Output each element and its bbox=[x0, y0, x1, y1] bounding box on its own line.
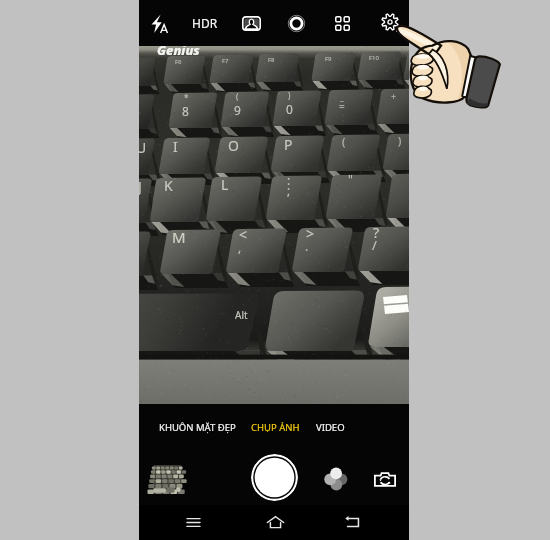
staticText: Genius bbox=[157, 46, 200, 59]
staticText: F10 bbox=[369, 54, 379, 62]
button[interactable]: Flash auto bbox=[143, 7, 175, 39]
staticText: K bbox=[164, 176, 173, 195]
staticText: M bbox=[172, 227, 186, 247]
staticText: L bbox=[221, 175, 229, 194]
staticText: " bbox=[348, 171, 353, 187]
staticText: F9 bbox=[325, 55, 332, 63]
button[interactable]: Recents bbox=[178, 507, 208, 537]
staticText: KHUÔN MẶT ĐẸP bbox=[159, 421, 236, 434]
staticText: . bbox=[305, 238, 309, 254]
button[interactable]: Home bbox=[260, 507, 290, 537]
staticText: ( bbox=[342, 134, 346, 149]
button[interactable]: HDR bbox=[189, 7, 221, 39]
button[interactable]: Filters bbox=[322, 465, 350, 493]
staticText: F8 bbox=[268, 56, 275, 64]
staticText: ) bbox=[288, 90, 291, 101]
button[interactable]: Shooting modes bbox=[326, 7, 358, 39]
staticText: > bbox=[306, 224, 315, 243]
staticText: / bbox=[372, 236, 377, 254]
button[interactable]: Gallery bbox=[153, 465, 182, 494]
staticText: 0 bbox=[286, 101, 293, 117]
staticText: : bbox=[287, 172, 291, 188]
staticText: I bbox=[173, 137, 178, 156]
staticText: ) bbox=[398, 133, 402, 148]
button[interactable]: CHỤP ẢNH bbox=[249, 418, 302, 437]
staticText: U bbox=[139, 138, 147, 157]
staticText: F6 bbox=[175, 58, 182, 66]
staticText: O bbox=[228, 136, 239, 155]
staticText: < bbox=[239, 225, 248, 244]
staticText: * bbox=[184, 92, 189, 103]
staticText: HDR bbox=[192, 15, 218, 31]
button[interactable]: Back bbox=[338, 507, 368, 537]
staticText: P bbox=[284, 135, 293, 154]
staticText: ? bbox=[373, 223, 380, 242]
button[interactable]: Beauty mode bbox=[280, 7, 312, 39]
button[interactable]: Portrait mode bbox=[235, 7, 267, 39]
staticText: CHỤP ẢNH bbox=[251, 421, 300, 434]
button[interactable]: Take photo bbox=[251, 454, 298, 501]
staticText: J bbox=[139, 177, 142, 196]
staticText: ; bbox=[287, 182, 291, 198]
button[interactable]: Switch camera bbox=[371, 465, 399, 493]
staticText: _ bbox=[340, 91, 344, 102]
staticText: VIDEO bbox=[316, 421, 345, 434]
staticText: + bbox=[391, 90, 397, 102]
staticText: Alt bbox=[235, 308, 248, 322]
staticText: ( bbox=[236, 91, 239, 102]
button[interactable]: VIDEO bbox=[314, 418, 347, 437]
button[interactable]: Settings bbox=[374, 6, 406, 38]
staticText: , bbox=[238, 239, 242, 255]
staticText: F7 bbox=[222, 57, 229, 65]
staticText: 9 bbox=[234, 102, 241, 118]
button[interactable]: KHUÔN MẶT ĐẸP bbox=[157, 418, 238, 437]
staticText: 8 bbox=[182, 103, 189, 119]
staticText: = bbox=[339, 99, 345, 113]
